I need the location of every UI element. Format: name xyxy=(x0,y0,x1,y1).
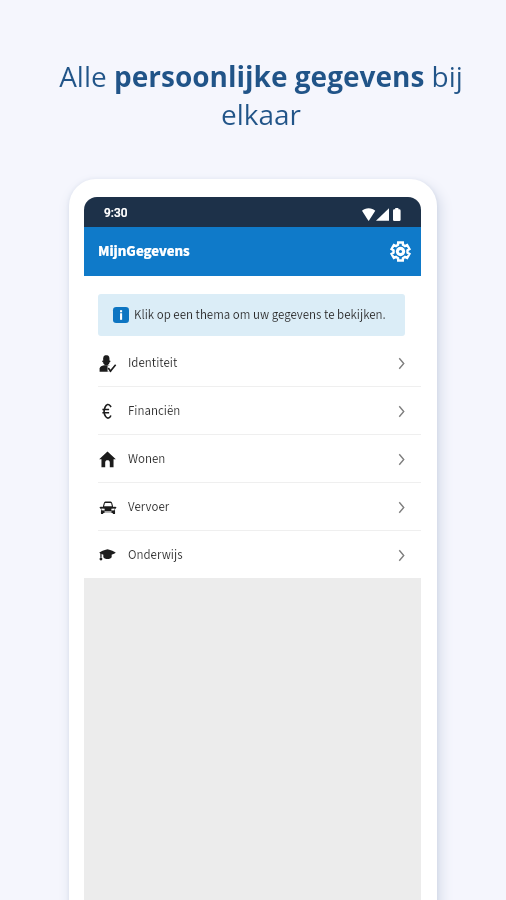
button[interactable]: Vervoer xyxy=(84,483,421,531)
staticText: Onderwijs xyxy=(128,546,183,564)
staticText: Financiën xyxy=(128,402,181,420)
staticText: 9:30 xyxy=(104,206,128,220)
button[interactable]: Settings xyxy=(386,237,414,265)
button[interactable]: Onderwijs xyxy=(84,531,421,578)
staticText: Klik op een thema om uw gegevens te beki… xyxy=(134,306,386,324)
staticText: Vervoer xyxy=(128,498,170,516)
button[interactable]: Wonen xyxy=(84,435,421,483)
staticText: Wonen xyxy=(128,450,166,468)
button[interactable]: Identiteit xyxy=(84,339,421,387)
staticText: Identiteit xyxy=(128,354,178,372)
staticText: Alle persoonlijke gegevens bij elkaar xyxy=(43,57,479,133)
staticText: MijnGegevens xyxy=(98,241,190,262)
button[interactable]: Financiën xyxy=(84,387,421,435)
